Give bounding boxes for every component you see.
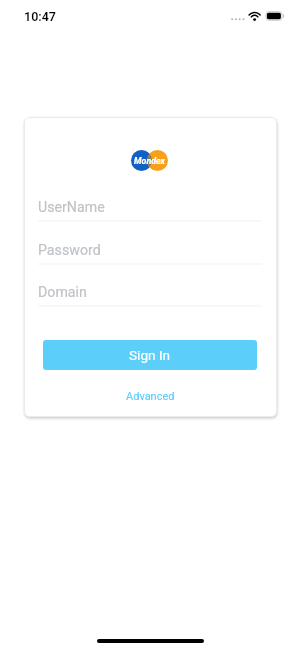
staticText: Mondex [134, 156, 165, 166]
other: Cellular signal [229, 15, 247, 24]
button[interactable]: Advanced [24, 385, 277, 407]
button[interactable]: Sign In [43, 340, 257, 370]
button[interactable]: UserName [38, 195, 262, 219]
other: Battery full [265, 11, 285, 21]
staticText: UserName [38, 199, 105, 216]
staticText: 10:47 [24, 9, 56, 24]
button[interactable]: Password [38, 238, 262, 262]
staticText: Sign In [129, 347, 171, 363]
staticText: Password [38, 242, 101, 259]
staticText: Advanced [126, 390, 175, 403]
button[interactable]: Domain [38, 280, 262, 304]
other: Wi-Fi [248, 11, 261, 22]
other: Mondex logo [131, 150, 168, 171]
staticText: Domain [38, 284, 87, 301]
